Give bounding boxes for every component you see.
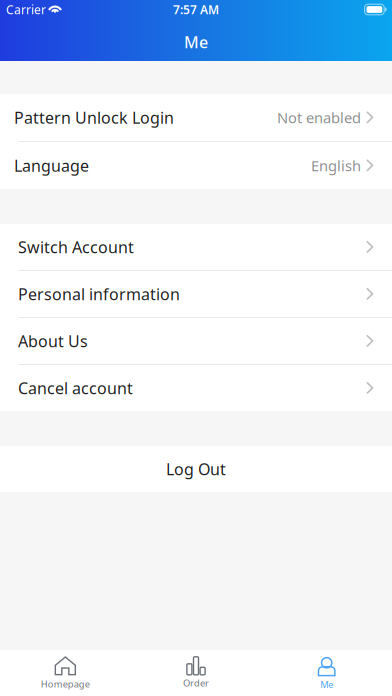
staticText: Pattern Unlock Login — [14, 107, 174, 128]
staticText: Order — [183, 677, 209, 689]
button[interactable]: Order — [131, 650, 261, 696]
button[interactable]: Log Out — [0, 446, 392, 492]
staticText: About Us — [18, 330, 88, 352]
button[interactable]: Switch Account — [0, 224, 392, 270]
staticText: Cancel account — [18, 377, 133, 399]
staticText: Carrier — [6, 1, 46, 17]
button[interactable]: Pattern Unlock Login — [0, 94, 392, 141]
button[interactable]: About Us — [0, 318, 392, 364]
staticText: Not enabled — [277, 108, 361, 127]
staticText: Personal information — [18, 283, 180, 305]
button[interactable]: Cancel account — [0, 365, 392, 411]
staticText: Log Out — [166, 458, 226, 480]
staticText: Switch Account — [18, 236, 134, 258]
staticText: Me — [184, 31, 208, 53]
staticText: Language — [14, 155, 89, 176]
staticText: Homepage — [41, 678, 90, 690]
staticText: Me — [320, 678, 333, 691]
button[interactable]: Homepage — [0, 650, 131, 696]
button[interactable]: Language — [0, 142, 392, 189]
staticText: 7:57 AM — [173, 1, 219, 17]
staticText: English — [311, 156, 361, 175]
button[interactable]: Me — [261, 650, 392, 696]
button[interactable]: Personal information — [0, 271, 392, 317]
